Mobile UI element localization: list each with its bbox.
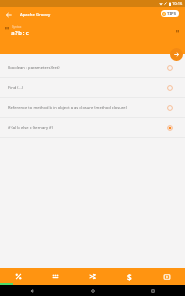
button[interactable]: Reference to method b in object a as clo… [0, 98, 185, 118]
staticText: (boolean : parameters)(ret) [8, 65, 60, 71]
button[interactable]: Community [37, 268, 74, 285]
staticText: $ [127, 272, 132, 281]
button[interactable]: Videos [148, 268, 185, 285]
button[interactable]: Donate [111, 268, 148, 285]
button[interactable]: Back [4, 10, 13, 19]
staticText: Apache Groovy [20, 12, 51, 18]
staticText: Syntax [12, 25, 22, 29]
staticText: a?b:c [11, 29, 30, 37]
button[interactable]: Shuffle [74, 268, 111, 285]
button[interactable]: if (a) b else c (ternary if) [0, 118, 185, 138]
staticText: Reference to method b in object a as clo… [8, 105, 127, 111]
button[interactable]: (boolean : parameters)(ret) [0, 58, 185, 78]
staticText: if (a) b else c (ternary if) [8, 125, 53, 131]
button[interactable]: TIPS [161, 10, 179, 17]
button[interactable]: Next question [170, 48, 183, 61]
button[interactable]: Find (...) [0, 78, 185, 98]
staticText: 10:16 [172, 1, 183, 6]
staticText: Find (...) [8, 85, 24, 91]
staticText: TIPS [167, 11, 176, 17]
button[interactable]: Statistics [0, 268, 37, 285]
